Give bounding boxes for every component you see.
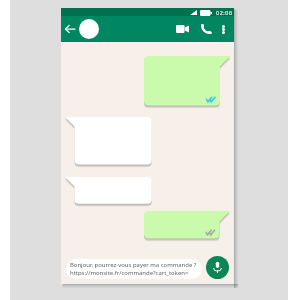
button[interactable]: Voice call <box>199 22 213 36</box>
button[interactable]: Video call <box>175 22 189 36</box>
button[interactable]: Record voice message <box>206 256 229 279</box>
button[interactable]: More options <box>217 23 230 36</box>
button[interactable] <box>65 115 156 168</box>
button[interactable] <box>144 209 230 242</box>
button[interactable]: Bonjour, pourrez-vous payer ma commande … <box>66 259 202 279</box>
button[interactable]: Back <box>63 22 77 36</box>
button[interactable] <box>144 54 231 109</box>
staticText: Bonjour, pourrez-vous payer ma commande … <box>70 261 197 269</box>
staticText: https://monsite.fr/commande?cart_token= <box>70 269 189 277</box>
button[interactable]: Contact profile <box>79 19 99 39</box>
staticText: 02:06 <box>216 9 233 16</box>
button[interactable] <box>65 175 156 207</box>
